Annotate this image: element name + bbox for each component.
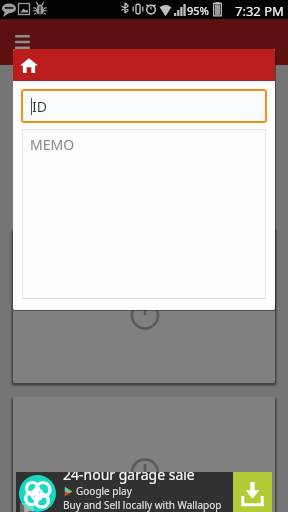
staticText: 24-hour garage sale (63, 472, 195, 484)
button[interactable]: ID (23, 91, 265, 121)
button[interactable]: Menu (9, 29, 36, 56)
staticText: Google play (76, 484, 132, 498)
button[interactable]: MEMO (22, 129, 266, 299)
button[interactable]: 24-hour garage sale (16, 472, 272, 512)
staticText: MEMO (30, 135, 75, 154)
button[interactable] (13, 228, 275, 383)
staticText: 95% (187, 3, 209, 18)
staticText: 7:32 PM (235, 2, 284, 20)
staticText: ID (32, 97, 47, 116)
button[interactable]: Install (233, 472, 272, 512)
staticText: Buy and Sell locally with Wallapop (63, 498, 222, 512)
button[interactable]: Home (13, 49, 275, 81)
button[interactable] (13, 397, 275, 512)
